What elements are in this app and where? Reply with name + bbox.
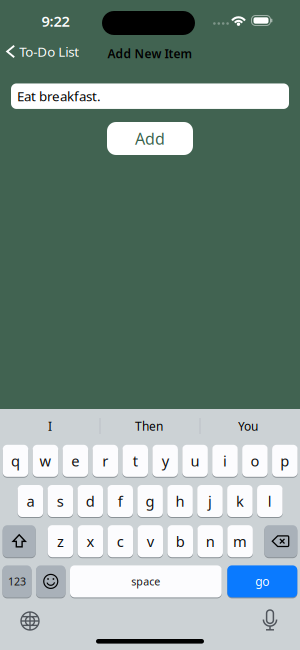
staticText: l bbox=[268, 491, 272, 511]
button[interactable]: f bbox=[107, 484, 133, 517]
staticText: h bbox=[176, 491, 185, 511]
button[interactable]: m bbox=[227, 525, 253, 558]
staticText: 123 bbox=[8, 574, 26, 588]
button[interactable]: u bbox=[182, 444, 208, 477]
button[interactable]: b bbox=[167, 525, 193, 558]
button[interactable]: l bbox=[257, 484, 283, 517]
staticText: r bbox=[102, 451, 108, 471]
button[interactable]: j bbox=[197, 484, 223, 517]
button[interactable]: Dictation bbox=[253, 603, 287, 637]
button[interactable]: i bbox=[212, 444, 238, 477]
staticText: v bbox=[147, 531, 154, 551]
staticText: g bbox=[146, 491, 155, 511]
button[interactable]: e bbox=[63, 444, 88, 477]
staticText: Then bbox=[135, 418, 163, 434]
button[interactable]: k bbox=[227, 484, 253, 517]
staticText: You bbox=[238, 418, 258, 434]
staticText: space bbox=[131, 574, 160, 588]
staticText: z bbox=[57, 531, 64, 551]
button[interactable]: Back bbox=[6, 37, 80, 65]
button[interactable]: 123 bbox=[2, 565, 31, 598]
button[interactable]: z bbox=[48, 525, 73, 558]
button[interactable]: I bbox=[2, 411, 98, 441]
button[interactable]: Next keyboard bbox=[13, 604, 47, 638]
staticText: c bbox=[117, 531, 124, 551]
staticText: k bbox=[236, 491, 244, 511]
button[interactable]: Emoji bbox=[36, 565, 65, 598]
staticText: d bbox=[86, 491, 95, 511]
staticText: x bbox=[86, 531, 94, 551]
button[interactable]: o bbox=[242, 444, 268, 477]
staticText: I bbox=[48, 418, 52, 434]
staticText: Eat breakfast. bbox=[17, 87, 101, 105]
button[interactable]: Then bbox=[101, 411, 197, 441]
button[interactable]: c bbox=[108, 525, 133, 558]
button[interactable]: y bbox=[152, 444, 178, 477]
staticText: go bbox=[255, 573, 269, 589]
staticText: m bbox=[233, 531, 247, 551]
button[interactable]: Shift bbox=[3, 525, 36, 558]
button[interactable]: v bbox=[137, 525, 163, 558]
button[interactable]: n bbox=[197, 525, 223, 558]
button[interactable]: q bbox=[3, 444, 28, 477]
staticText: To-Do List bbox=[19, 43, 79, 60]
staticText: 9:22 bbox=[41, 11, 69, 31]
staticText: o bbox=[250, 451, 259, 471]
staticText: y bbox=[162, 451, 169, 471]
staticText: j bbox=[208, 491, 212, 511]
button[interactable]: t bbox=[122, 444, 148, 477]
button[interactable]: w bbox=[33, 444, 58, 477]
staticText: i bbox=[223, 451, 227, 471]
staticText: s bbox=[57, 491, 64, 511]
button[interactable]: New item text field bbox=[11, 83, 289, 109]
button[interactable]: Delete bbox=[264, 525, 297, 558]
button[interactable]: g bbox=[137, 484, 163, 517]
staticText: b bbox=[176, 531, 185, 551]
staticText: a bbox=[26, 491, 34, 511]
button[interactable]: You bbox=[200, 411, 296, 441]
button[interactable]: d bbox=[77, 484, 103, 517]
staticText: u bbox=[191, 451, 200, 471]
staticText: t bbox=[133, 451, 138, 471]
button[interactable]: a bbox=[18, 484, 43, 517]
staticText: e bbox=[71, 451, 79, 471]
button[interactable]: h bbox=[167, 484, 193, 517]
button[interactable]: go bbox=[227, 565, 297, 598]
staticText: Add New Item bbox=[107, 45, 192, 61]
button[interactable]: x bbox=[78, 525, 103, 558]
staticText: p bbox=[280, 451, 289, 471]
staticText: f bbox=[118, 491, 123, 511]
button[interactable]: p bbox=[272, 444, 298, 477]
button[interactable]: space bbox=[70, 565, 222, 598]
button[interactable]: Add bbox=[107, 122, 193, 155]
staticText: w bbox=[39, 451, 51, 471]
staticText: n bbox=[206, 531, 215, 551]
button[interactable]: s bbox=[47, 484, 73, 517]
button[interactable]: r bbox=[92, 444, 118, 477]
staticText: Add bbox=[135, 128, 165, 149]
staticText: q bbox=[11, 451, 20, 471]
